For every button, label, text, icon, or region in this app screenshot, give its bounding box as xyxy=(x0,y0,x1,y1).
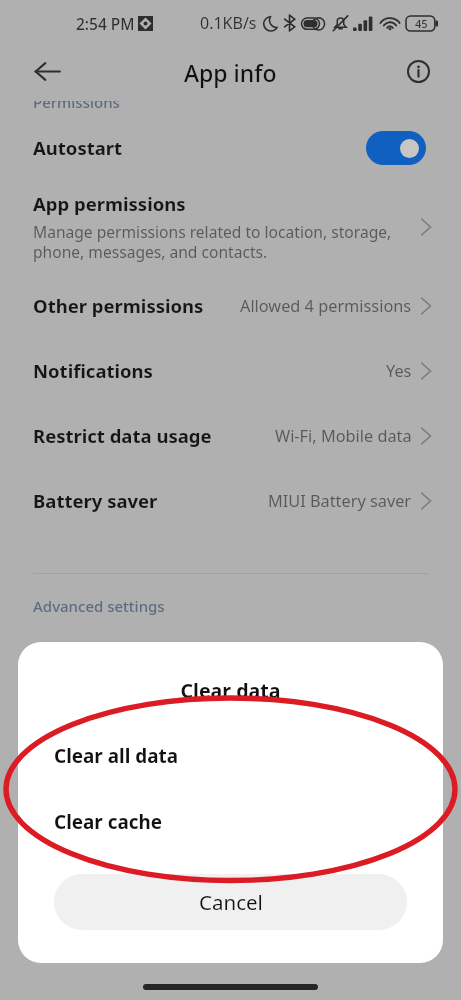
staticText: Allowed 4 permissions xyxy=(240,295,412,317)
staticText: Restrict data usage xyxy=(33,423,275,448)
staticText: Permissions xyxy=(33,101,120,112)
staticText: App permissions xyxy=(33,191,186,216)
button[interactable]: Back xyxy=(28,52,66,90)
button[interactable]: App permissions xyxy=(0,181,461,273)
staticText: Battery saver xyxy=(33,488,268,513)
button[interactable]: Battery saver xyxy=(0,468,461,533)
button[interactable]: Autostart toggle xyxy=(366,131,426,165)
staticText: Notifications xyxy=(33,358,386,383)
staticText: Autostart xyxy=(33,135,366,160)
staticText: Cancel xyxy=(199,888,263,916)
staticText: App info xyxy=(184,57,277,88)
staticText: Clear data xyxy=(18,677,443,704)
button[interactable]: Restrict data usage xyxy=(0,403,461,468)
button[interactable]: Clear cache xyxy=(18,797,443,847)
staticText: Clear cache xyxy=(54,809,163,835)
staticText: 2:54 PM xyxy=(76,13,135,34)
button[interactable]: Cancel xyxy=(54,874,407,930)
button[interactable]: Other permissions xyxy=(0,273,461,338)
staticText: 0.1KB/s xyxy=(200,12,257,34)
button[interactable]: Notifications xyxy=(0,338,461,403)
staticText: Clear all data xyxy=(54,743,178,769)
staticText: Yes xyxy=(386,360,412,382)
staticText: 45 xyxy=(415,16,428,31)
staticText: Wi-Fi, Mobile data xyxy=(275,425,412,447)
button[interactable]: Clear all data xyxy=(18,731,443,781)
staticText: Other permissions xyxy=(33,293,240,318)
staticText: MIUI Battery saver xyxy=(268,490,412,512)
staticText: Advanced settings xyxy=(33,596,165,616)
button[interactable]: Autostart xyxy=(0,114,461,181)
staticText: Manage permissions related to location, … xyxy=(33,221,392,263)
button[interactable]: Info xyxy=(406,59,431,84)
